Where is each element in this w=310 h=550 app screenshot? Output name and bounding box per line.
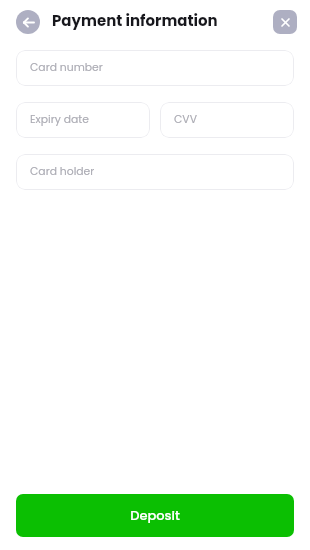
button[interactable]: Close — [273, 10, 297, 34]
staticText: Deposit — [130, 506, 180, 524]
button[interactable]: Back — [16, 10, 40, 34]
staticText: CVV — [174, 112, 197, 127]
button[interactable]: Deposit — [16, 494, 294, 537]
button[interactable]: Card number — [16, 50, 294, 86]
staticText: Card holder — [30, 164, 95, 179]
button[interactable]: CVV — [160, 102, 294, 138]
staticText: Card number — [30, 60, 103, 75]
staticText: Payment information — [52, 10, 218, 31]
staticText: Expiry date — [30, 112, 89, 127]
button[interactable]: Expiry date — [16, 102, 150, 138]
button[interactable]: Card holder — [16, 154, 294, 190]
